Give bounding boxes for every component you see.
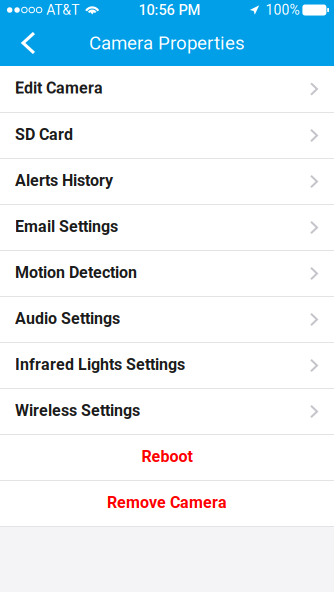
button[interactable]: Wireless Settings xyxy=(0,389,334,434)
button[interactable]: Infrared Lights Settings xyxy=(0,343,334,388)
button[interactable]: Audio Settings xyxy=(0,297,334,342)
staticText: Wireless Settings xyxy=(15,401,140,420)
button[interactable]: Alerts History xyxy=(0,159,334,204)
staticText: Camera Properties xyxy=(89,32,245,54)
button[interactable]: SD Card xyxy=(0,113,334,158)
staticText: 10:56 PM xyxy=(138,1,200,19)
staticText: Edit Camera xyxy=(15,79,103,97)
staticText: Audio Settings xyxy=(15,309,120,328)
button[interactable]: Motion Detection xyxy=(0,251,334,296)
staticText: AT&T xyxy=(46,2,79,18)
staticText: Reboot xyxy=(141,447,192,466)
staticText: Infrared Lights Settings xyxy=(15,355,185,374)
button[interactable]: Email Settings xyxy=(0,205,334,250)
button[interactable]: Edit Camera xyxy=(0,66,334,112)
staticText: Email Settings xyxy=(15,217,118,236)
button[interactable]: Back xyxy=(0,20,57,66)
staticText: SD Card xyxy=(15,125,73,144)
staticText: Remove Camera xyxy=(107,493,227,512)
button[interactable]: Reboot xyxy=(0,435,334,480)
staticText: 100% xyxy=(265,2,299,18)
button[interactable]: Remove Camera xyxy=(0,481,334,526)
staticText: Motion Detection xyxy=(15,263,137,282)
staticText: Alerts History xyxy=(15,171,113,190)
